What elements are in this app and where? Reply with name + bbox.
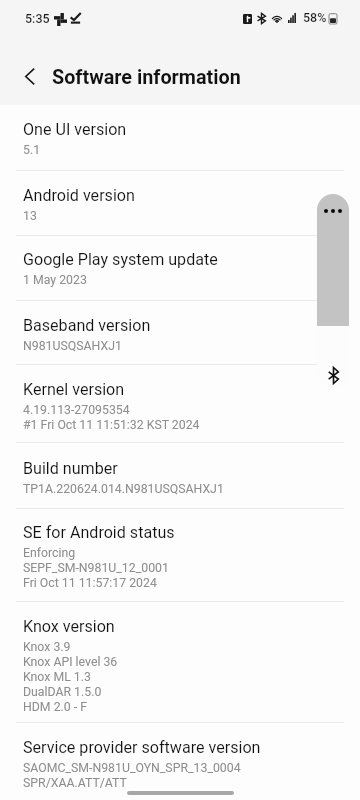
staticText: Kernel version bbox=[23, 380, 125, 399]
staticText: TP1A.220624.014.N981USQSAHXJ1 bbox=[23, 481, 224, 496]
staticText: Knox version bbox=[23, 617, 115, 636]
staticText: #1 Fri Oct 11 11:51:32 KST 2024 bbox=[23, 417, 200, 432]
button[interactable]: Google Play system update bbox=[0, 235, 360, 301]
staticText: SPR/XAA.ATT/ATT bbox=[23, 775, 127, 790]
staticText: Enforcing bbox=[23, 545, 76, 560]
staticText: HDM 2.0 - F bbox=[23, 699, 87, 714]
button[interactable]: SE for Android status bbox=[0, 508, 360, 602]
staticText: Knox API level 36 bbox=[23, 654, 118, 669]
staticText: Knox 3.9 bbox=[23, 639, 71, 654]
button[interactable]: Service provider software version bbox=[0, 723, 360, 800]
staticText: Fri Oct 11 11:57:17 2024 bbox=[23, 575, 157, 590]
staticText: Knox ML 1.3 bbox=[23, 669, 91, 684]
staticText: Baseband version bbox=[23, 316, 151, 335]
button[interactable]: Back bbox=[8, 54, 52, 98]
button[interactable]: Kernel version bbox=[0, 365, 360, 443]
button[interactable]: Build number bbox=[0, 444, 360, 509]
staticText: SAOMC_SM-N981U_OYN_SPR_13_0004 bbox=[23, 760, 241, 775]
staticText: SE for Android status bbox=[23, 523, 175, 542]
staticText: 5.1 bbox=[23, 142, 41, 157]
staticText: Software information bbox=[52, 66, 241, 89]
button[interactable]: Knox version bbox=[0, 602, 360, 723]
staticText: Service provider software version bbox=[23, 738, 261, 757]
staticText: SEPF_SM-N981U_12_0001 bbox=[23, 560, 169, 575]
button[interactable]: Android version bbox=[0, 171, 360, 236]
staticText: One UI version bbox=[23, 120, 127, 139]
staticText: Google Play system update bbox=[23, 250, 218, 269]
staticText: 58% bbox=[303, 10, 327, 25]
staticText: 4.19.113-27095354 bbox=[23, 402, 130, 417]
button[interactable]: One UI version bbox=[0, 105, 360, 171]
staticText: 13 bbox=[23, 208, 37, 223]
staticText: 5:35 bbox=[25, 11, 50, 26]
button[interactable]: Edge panel handle bbox=[317, 194, 349, 388]
staticText: N981USQSAHXJ1 bbox=[23, 338, 122, 353]
staticText: Build number bbox=[23, 459, 118, 478]
button[interactable]: Baseband version bbox=[0, 301, 360, 365]
staticText: DualDAR 1.5.0 bbox=[23, 684, 102, 699]
staticText: Android version bbox=[23, 186, 135, 205]
staticText: 1 May 2023 bbox=[23, 272, 87, 287]
